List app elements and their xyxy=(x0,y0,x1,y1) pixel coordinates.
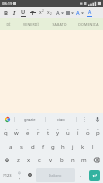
staticText: r xyxy=(37,129,40,137)
button[interactable]: Text color xyxy=(75,7,85,18)
staticText: b xyxy=(60,156,64,164)
button[interactable]: f xyxy=(38,139,48,153)
button[interactable]: VENERDÌ xyxy=(16,22,45,27)
staticText: h xyxy=(61,143,65,151)
staticText: 6 xyxy=(57,127,59,130)
button[interactable]: Voice input xyxy=(91,113,103,125)
staticText: SABATO xyxy=(52,22,67,27)
button[interactable]: ciao xyxy=(46,113,76,125)
staticText: s xyxy=(20,143,23,151)
staticText: m xyxy=(81,156,87,164)
staticText: . xyxy=(80,172,82,179)
button[interactable]: Backspace xyxy=(89,153,103,167)
staticText: c xyxy=(38,156,41,164)
staticText: ?123 xyxy=(3,173,12,178)
staticText: x xyxy=(39,9,42,16)
button[interactable]: b xyxy=(56,153,67,167)
button[interactable]: I xyxy=(10,7,19,18)
staticText: z xyxy=(17,156,20,164)
button[interactable]: 5 xyxy=(43,125,53,139)
button[interactable]: 9 xyxy=(83,125,93,139)
staticText: Italiano xyxy=(49,173,62,178)
staticText: 7 xyxy=(67,127,69,130)
button[interactable]: v xyxy=(45,153,56,167)
staticText: t xyxy=(47,129,50,137)
button[interactable]: j xyxy=(68,139,78,153)
button[interactable]: Strikethrough xyxy=(28,7,37,18)
staticText: j xyxy=(72,143,74,151)
button[interactable]: n xyxy=(67,153,78,167)
button[interactable]: l xyxy=(88,139,98,153)
staticText: 0 xyxy=(97,127,99,130)
staticText: e xyxy=(26,129,30,137)
button[interactable]: grazie xyxy=(15,113,45,125)
button[interactable]: d xyxy=(27,139,38,153)
staticText: u xyxy=(66,129,70,137)
button[interactable]: Period xyxy=(76,168,86,182)
button[interactable]: Comma xyxy=(15,168,25,182)
staticText: n xyxy=(71,156,75,164)
button[interactable]: SABATO xyxy=(45,22,74,27)
button[interactable]: x xyxy=(23,153,34,167)
button[interactable]: 0 xyxy=(93,125,103,139)
staticText: A xyxy=(76,9,80,16)
button[interactable]: z xyxy=(13,153,23,167)
staticText: DOMENICA xyxy=(78,22,99,27)
button[interactable]: Space xyxy=(36,168,75,182)
staticText: VENERDÌ xyxy=(23,22,39,27)
button[interactable]: Superscript xyxy=(37,7,45,18)
button[interactable]: 8 xyxy=(73,125,83,139)
staticText: I xyxy=(13,9,16,17)
staticText: ⋮ xyxy=(82,116,87,122)
button[interactable]: 6 xyxy=(53,125,63,139)
button[interactable]: c xyxy=(34,153,45,167)
staticText: x xyxy=(47,9,50,16)
button[interactable]: Text color xyxy=(55,7,65,18)
staticText: k xyxy=(81,143,85,151)
button[interactable]: 3 xyxy=(22,125,33,139)
staticText: 4 xyxy=(37,127,39,130)
staticText: d xyxy=(31,143,35,151)
staticText: , xyxy=(19,174,21,180)
staticText: B xyxy=(4,9,8,17)
staticText: p xyxy=(96,129,100,137)
button[interactable]: DOMENICA xyxy=(74,22,103,27)
staticText: DÌ xyxy=(6,22,11,27)
staticText: o xyxy=(86,129,90,137)
staticText: g xyxy=(51,143,55,151)
button[interactable]: g xyxy=(48,139,58,153)
staticText: 3 xyxy=(27,127,29,130)
button[interactable]: Google xyxy=(0,113,14,125)
button[interactable]: s xyxy=(16,139,27,153)
button[interactable]: Subscript xyxy=(45,7,53,18)
staticText: 2 xyxy=(42,9,44,13)
button[interactable]: More xyxy=(77,113,91,125)
button[interactable]: Change language xyxy=(25,168,35,182)
button[interactable]: DÌ xyxy=(0,22,16,27)
button[interactable]: B xyxy=(1,7,10,18)
staticText: ciao xyxy=(57,117,65,122)
button[interactable]: Line spacing xyxy=(65,7,75,18)
staticText: T xyxy=(31,9,35,16)
button[interactable]: a xyxy=(5,139,16,153)
staticText: 08:19 xyxy=(2,1,13,6)
button[interactable]: k xyxy=(78,139,88,153)
button[interactable]: 2 xyxy=(11,125,22,139)
staticText: 5 xyxy=(47,127,49,130)
staticText: y xyxy=(56,129,60,137)
button[interactable]: Shift xyxy=(0,153,13,167)
staticText: f xyxy=(42,143,45,151)
button[interactable]: m xyxy=(78,153,89,167)
button[interactable]: Highlight color xyxy=(85,7,94,18)
button[interactable]: h xyxy=(58,139,68,153)
button[interactable]: Enter xyxy=(89,170,100,181)
staticText: A xyxy=(88,9,92,16)
staticText: 2 xyxy=(50,12,52,16)
button[interactable]: 1 xyxy=(0,125,11,139)
button[interactable]: ?123 xyxy=(0,168,15,182)
staticText: A xyxy=(56,9,60,16)
button[interactable]: Underline xyxy=(19,7,28,18)
button[interactable]: 7 xyxy=(63,125,73,139)
button[interactable]: 4 xyxy=(33,125,43,139)
